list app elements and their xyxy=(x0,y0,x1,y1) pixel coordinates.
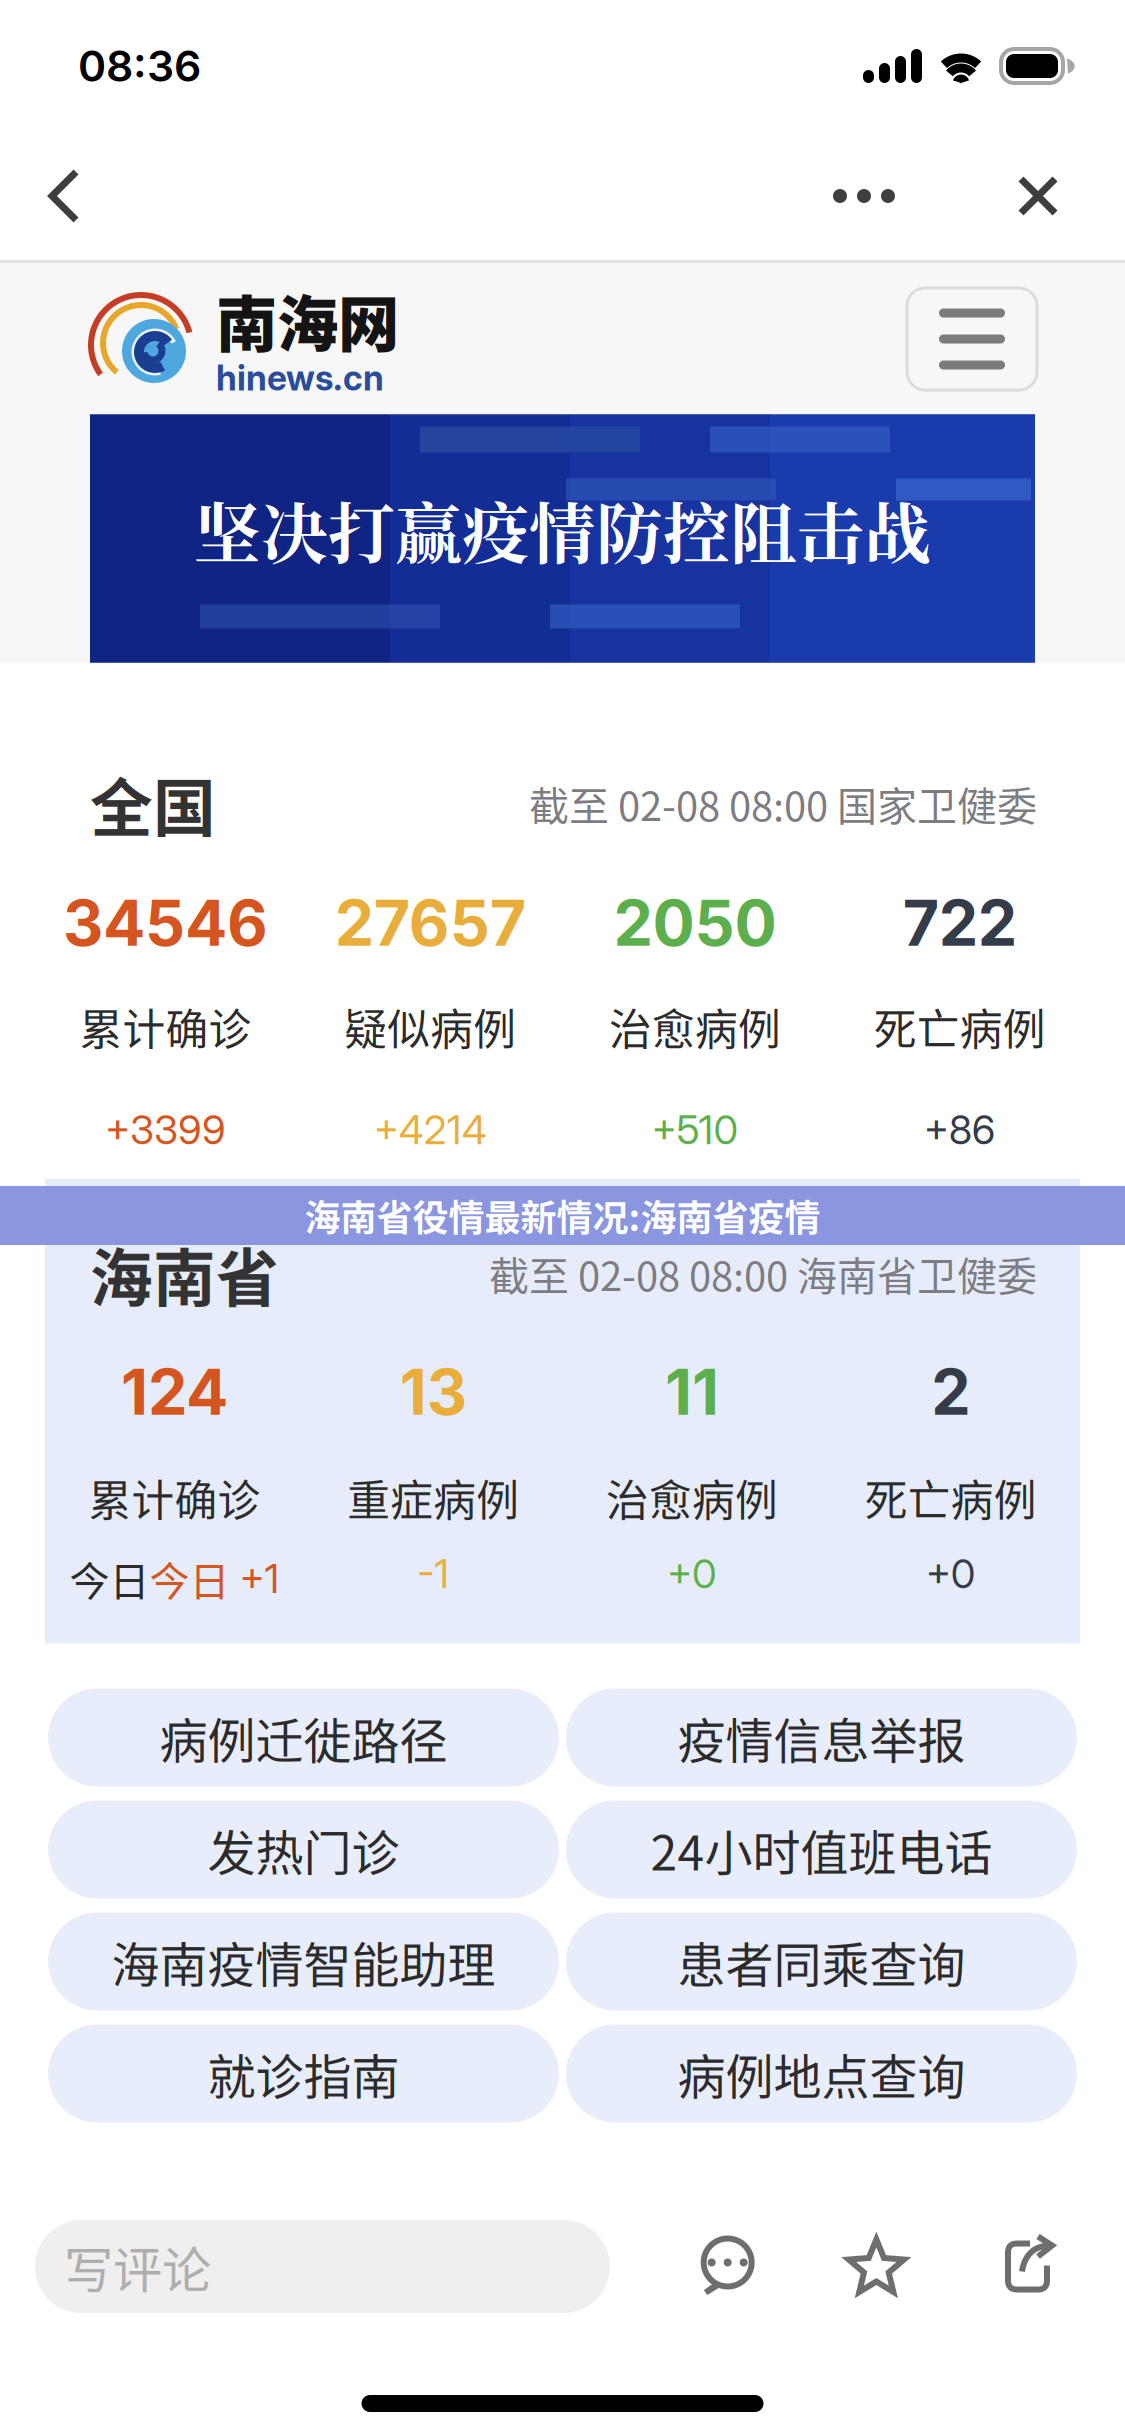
button[interactable]: More xyxy=(799,146,929,246)
staticText: 累计确诊 xyxy=(88,1467,260,1529)
staticText: 24小时值班电话 xyxy=(650,1815,992,1884)
staticText: 死亡病例 xyxy=(865,1467,1037,1529)
staticText: 治愈病例 xyxy=(606,1467,778,1529)
staticText: 海南省 xyxy=(90,1228,279,1319)
staticText: 11 xyxy=(665,1354,719,1430)
button[interactable]: Back xyxy=(16,146,112,246)
staticText: 2050 xyxy=(613,885,776,961)
button[interactable]: 疫情信息举报 xyxy=(566,1688,1077,1786)
staticText: 08:36 xyxy=(78,40,201,92)
staticText: 病例地点查询 xyxy=(677,2039,965,2108)
staticText: 今日 xyxy=(69,1550,149,1607)
staticText: 海南省役情最新情况:海南省疫情 xyxy=(304,1189,820,1241)
button[interactable]: 发热门诊 xyxy=(48,1800,559,1898)
staticText: 截至 02-08 08:00 海南省卫健委 xyxy=(489,1244,1037,1302)
staticText: 累计确诊 xyxy=(79,996,251,1058)
staticText: +86 xyxy=(924,1106,996,1154)
button[interactable]: 病例地点查询 xyxy=(566,2024,1077,2122)
button[interactable]: 病例迁徙路径 xyxy=(48,1688,559,1786)
staticText: 疑似病例 xyxy=(344,996,516,1058)
staticText: 重症病例 xyxy=(347,1467,519,1529)
staticText: +1 xyxy=(239,1554,279,1603)
button[interactable]: 写评论 xyxy=(35,2220,610,2313)
staticText: 疫情信息举报 xyxy=(677,1703,965,1772)
staticText: 今日 xyxy=(149,1550,229,1607)
staticText: 写评论 xyxy=(64,2231,211,2302)
staticText: 死亡病例 xyxy=(874,996,1046,1058)
staticText: +510 xyxy=(651,1106,738,1154)
staticText: 治愈病例 xyxy=(609,996,781,1058)
staticText: 34546 xyxy=(63,885,268,961)
staticText: +0 xyxy=(926,1550,976,1598)
staticText: +0 xyxy=(667,1550,717,1598)
button[interactable]: Menu xyxy=(907,288,1037,390)
staticText: 发热门诊 xyxy=(207,1815,399,1884)
staticText: 124 xyxy=(121,1354,228,1430)
staticText: +4214 xyxy=(374,1106,487,1154)
staticText: 13 xyxy=(400,1354,467,1430)
button[interactable]: 患者同乘查询 xyxy=(566,1912,1077,2010)
button[interactable]: 海南疫情智能助理 xyxy=(48,1912,559,2010)
staticText: +3399 xyxy=(105,1106,226,1154)
staticText: 截至 02-08 08:00 国家卫健委 xyxy=(529,774,1037,832)
button[interactable]: Favorite xyxy=(845,2235,907,2297)
staticText: hinews.cn xyxy=(216,357,384,399)
button[interactable]: Comments xyxy=(699,2237,757,2295)
staticText: 南海网 xyxy=(216,276,399,364)
button[interactable]: Close xyxy=(992,146,1084,246)
button[interactable]: Share xyxy=(996,2235,1058,2297)
staticText: 就诊指南 xyxy=(207,2039,399,2108)
staticText: 全国 xyxy=(90,758,216,849)
staticText: 27657 xyxy=(335,885,526,961)
staticText: 坚决打赢疫情防控阻击战 xyxy=(194,482,931,577)
staticText: 海南疫情智能助理 xyxy=(111,1927,495,1996)
button[interactable]: 就诊指南 xyxy=(48,2024,559,2122)
staticText: 病例迁徙路径 xyxy=(159,1703,447,1772)
staticText: 患者同乘查询 xyxy=(677,1927,965,1996)
staticText: -1 xyxy=(417,1550,449,1598)
button[interactable]: 24小时值班电话 xyxy=(566,1800,1077,1898)
staticText: 2 xyxy=(931,1354,970,1430)
staticText: 722 xyxy=(903,885,1017,961)
